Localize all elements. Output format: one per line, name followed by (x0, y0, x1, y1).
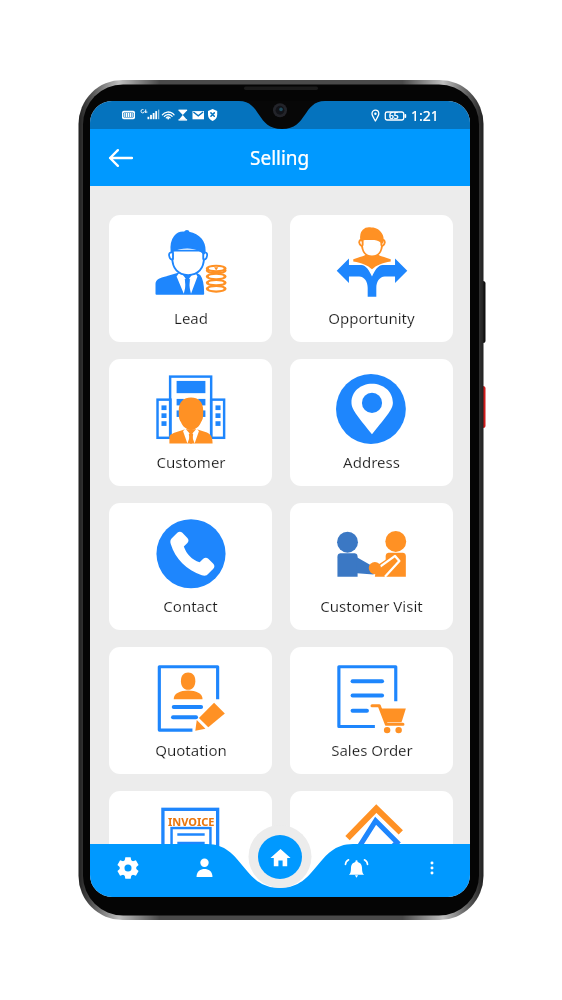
button[interactable]: Opportunity (290, 215, 453, 342)
button[interactable]: Lead (109, 215, 272, 342)
staticText: Sales Order (331, 740, 413, 760)
button[interactable]: Notifications (318, 844, 394, 897)
staticText: Customer Visit (320, 596, 423, 616)
staticText: Quotation (155, 740, 227, 760)
button[interactable]: Address (290, 359, 453, 486)
staticText: Contact (163, 596, 218, 616)
staticText: Selling (250, 145, 310, 171)
button[interactable]: Customer (109, 359, 272, 486)
button[interactable]: Quotation (109, 647, 272, 774)
button[interactable]: Settings (90, 844, 166, 897)
button[interactable]: Property (290, 791, 453, 897)
staticText: Address (343, 452, 400, 472)
staticText: Opportunity (328, 308, 415, 328)
button[interactable]: Customer Visit (290, 503, 453, 630)
staticText: 1:21 (411, 106, 439, 125)
button[interactable]: Back (100, 137, 142, 179)
staticText: Customer (156, 452, 226, 472)
button[interactable]: Home (258, 835, 302, 879)
button[interactable]: Profile (166, 844, 242, 897)
button[interactable]: Contact (109, 503, 272, 630)
staticText: Lead (174, 308, 208, 328)
staticText: 65 (389, 110, 399, 122)
button[interactable]: INVOICE (109, 791, 272, 897)
button[interactable]: Sales Order (290, 647, 453, 774)
staticText: INVOICE (168, 814, 215, 829)
button[interactable]: More (394, 844, 470, 897)
